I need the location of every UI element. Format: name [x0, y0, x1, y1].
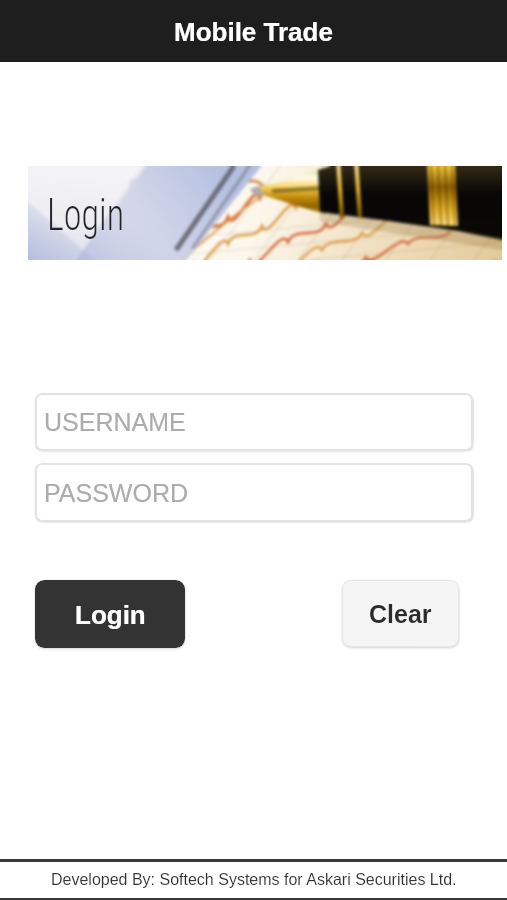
- staticText: USERNAME: [44, 408, 186, 436]
- staticText: Clear: [369, 600, 432, 628]
- staticText: Mobile Trade: [174, 17, 333, 46]
- button[interactable]: USERNAME: [35, 393, 473, 451]
- button[interactable]: PASSWORD: [35, 463, 473, 522]
- staticText: Login: [75, 600, 146, 629]
- staticText: PASSWORD: [44, 479, 188, 507]
- staticText: Login: [47, 189, 124, 241]
- button[interactable]: Mobile Trade: [0, 0, 507, 62]
- button[interactable]: Login: [35, 580, 185, 648]
- button[interactable]: Clear: [342, 580, 459, 647]
- staticText: Developed By: Softech Systems for Askari…: [51, 871, 457, 889]
